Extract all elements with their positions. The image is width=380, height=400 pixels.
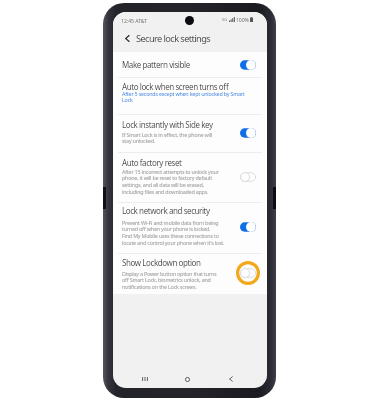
- staticText: Make pattern visible: [122, 59, 190, 70]
- staticText: 5G: [222, 17, 227, 22]
- staticText: 12:45 AT&T: [121, 17, 148, 24]
- button[interactable]: Switch off: [240, 268, 256, 278]
- button[interactable]: Recent apps: [137, 371, 153, 387]
- staticText: If Smart Lock is in effect, the phone wi…: [122, 131, 262, 145]
- button[interactable]: Switch on: [240, 60, 256, 70]
- staticText: Auto lock when screen turns off: [122, 81, 229, 92]
- staticText: Show Lockdown option: [122, 257, 201, 268]
- staticText: Lock network and security: [122, 205, 210, 216]
- staticText: Auto factory reset: [122, 157, 182, 168]
- staticText: Prevent Wi-Fi and mobile data from being…: [122, 219, 262, 247]
- staticText: Lock instantly with Side key: [122, 119, 213, 130]
- staticText: Display a Power button option that turns…: [122, 270, 262, 291]
- button[interactable]: Navigate up: [119, 30, 135, 46]
- staticText: After 15 incorrect attempts to unlock yo…: [122, 168, 262, 196]
- button[interactable]: Switch on: [240, 128, 256, 138]
- button[interactable]: Back: [223, 371, 239, 387]
- staticText: Secure lock settings: [136, 32, 211, 45]
- button[interactable]: Home: [179, 371, 195, 387]
- button[interactable]: Switch off: [240, 172, 256, 182]
- button[interactable]: Switch on: [240, 222, 256, 232]
- staticText: 100%: [236, 16, 249, 23]
- staticText: After 5 seconds except when kept unlocke…: [122, 90, 262, 104]
